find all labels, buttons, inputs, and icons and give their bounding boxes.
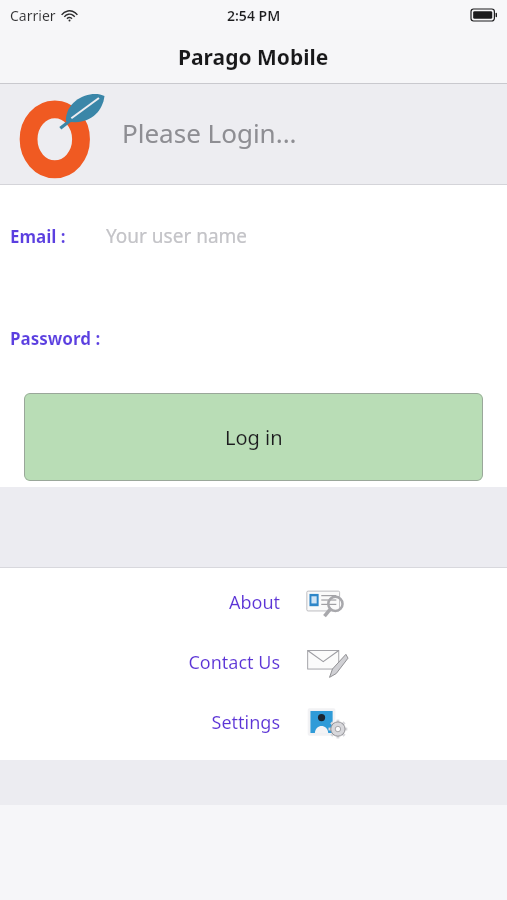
- button[interactable]: Password :: [0, 323, 507, 353]
- staticText: Carrier: [10, 6, 56, 25]
- staticText: Email :: [10, 225, 66, 248]
- staticText: Settings: [211, 710, 280, 735]
- staticText: Password :: [10, 327, 101, 350]
- button[interactable]: Log in: [24, 393, 483, 481]
- staticText: Contact Us: [188, 650, 280, 675]
- button[interactable]: About: [0, 586, 507, 618]
- button[interactable]: Contact Us: [0, 646, 507, 678]
- staticText: Your user name: [106, 223, 248, 249]
- button[interactable]: Settings: [0, 706, 507, 738]
- staticText: About: [228, 590, 280, 615]
- staticText: Log in: [225, 424, 283, 451]
- staticText: Please Login...: [122, 115, 297, 150]
- button[interactable]: Email :: [0, 219, 507, 253]
- staticText: Parago Mobile: [178, 43, 329, 72]
- staticText: 2:54 PM: [227, 6, 281, 25]
